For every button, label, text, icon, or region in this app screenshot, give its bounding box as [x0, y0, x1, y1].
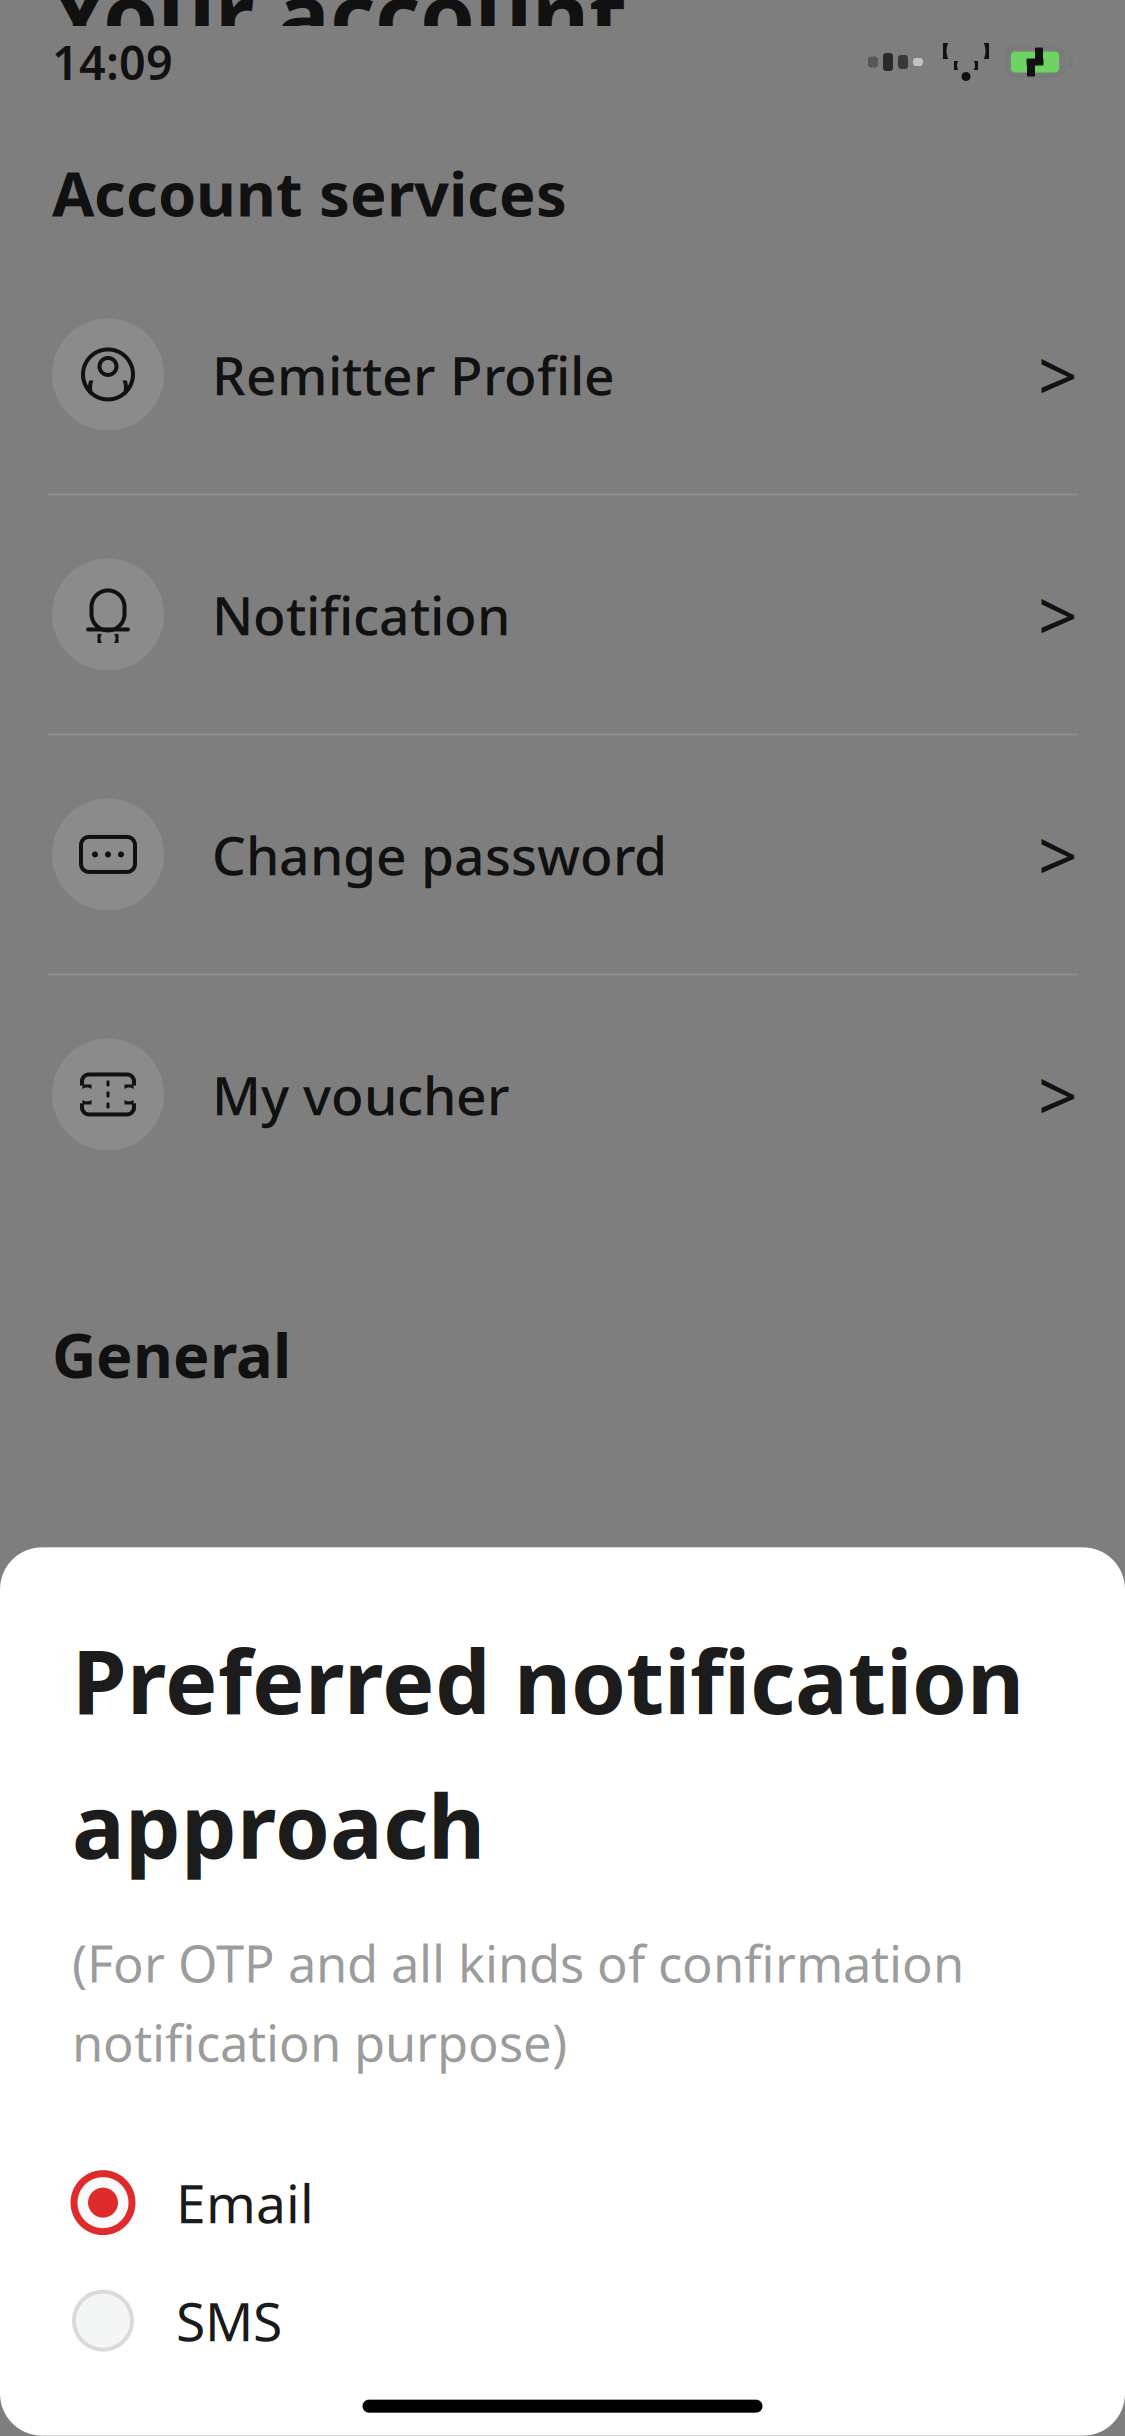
button[interactable]: Email [0, 2144, 1125, 2262]
staticText: My voucher [212, 1059, 510, 1130]
staticText: Account services [52, 152, 567, 233]
staticText: > [1038, 1048, 1078, 1140]
staticText: (For OTP and all kinds of confirmation [72, 1929, 964, 1996]
staticText: > [1038, 808, 1078, 900]
button[interactable]: My voucher [0, 975, 1125, 1213]
staticText: Preferred notification [72, 1621, 1024, 1738]
button[interactable]: SMS [0, 2262, 1125, 2380]
staticText: Remitter Profile [212, 339, 615, 410]
button[interactable]: Remitter Profile [0, 255, 1125, 493]
staticText: Email [176, 2167, 314, 2238]
staticText: General [52, 1313, 291, 1395]
staticText: Change password [212, 819, 667, 890]
staticText: SMS [176, 2285, 282, 2356]
staticText: 14:09 [52, 31, 173, 93]
staticText: approach [72, 1766, 485, 1883]
staticText: notification purpose) [72, 2008, 567, 2076]
staticText: > [1038, 328, 1078, 420]
staticText: > [1038, 568, 1078, 660]
staticText: Your account [52, 0, 627, 71]
button[interactable]: Change password [0, 735, 1125, 973]
staticText: Notification [212, 579, 510, 650]
button[interactable]: Notification [0, 495, 1125, 733]
